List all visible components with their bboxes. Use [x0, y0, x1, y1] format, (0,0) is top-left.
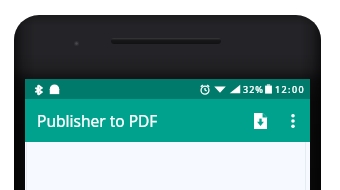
staticText: Publisher to PDF	[37, 110, 158, 131]
staticText: 32%	[243, 83, 264, 95]
button[interactable]: Export to PDF	[242, 103, 278, 139]
staticText: 12:00	[275, 83, 306, 95]
button[interactable]: More options	[278, 106, 308, 136]
